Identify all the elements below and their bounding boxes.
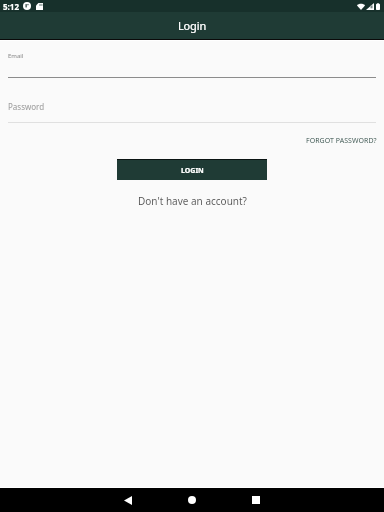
staticText: LOGIN — [181, 166, 204, 176]
button[interactable]: Don't have an account? — [132, 191, 253, 211]
staticText: 5:12 — [3, 1, 19, 12]
button[interactable]: LOGIN — [117, 159, 267, 180]
staticText: Email — [8, 52, 24, 60]
staticText: Password — [8, 101, 45, 112]
staticText: FORGOT PASSWORD? — [306, 136, 377, 146]
staticText: Login — [178, 18, 207, 33]
button[interactable]: Recent apps — [224, 488, 288, 512]
button[interactable]: Password — [0, 98, 384, 123]
button[interactable]: Home — [160, 488, 224, 512]
button[interactable]: FORGOT PASSWORD? — [299, 133, 384, 149]
button[interactable]: Email — [0, 51, 384, 78]
button[interactable]: Back — [96, 488, 160, 512]
staticText: Don't have an account? — [138, 194, 247, 208]
